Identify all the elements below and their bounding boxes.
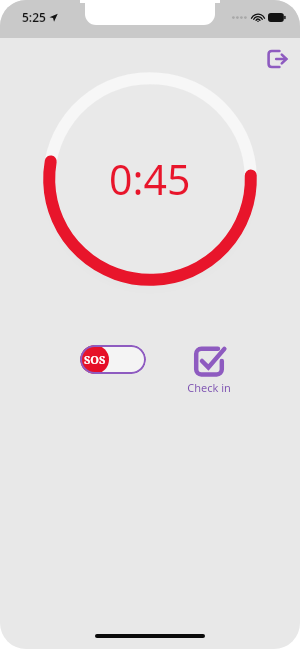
button[interactable]: Log out [262, 44, 292, 74]
button[interactable]: 0:45 [41, 70, 259, 288]
button[interactable]: Check in [180, 345, 238, 395]
staticText: Check in [187, 380, 231, 395]
staticText: 5:25 [22, 9, 46, 25]
staticText: SOS [84, 352, 106, 367]
staticText: 0:45 [109, 151, 191, 207]
button[interactable]: SOS emergency toggle [80, 345, 146, 374]
